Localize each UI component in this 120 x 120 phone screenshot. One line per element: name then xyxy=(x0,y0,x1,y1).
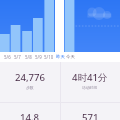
button[interactable]: Today step chart xyxy=(64,0,120,52)
staticText: 5/8 xyxy=(25,54,32,60)
staticText: 24,776 xyxy=(15,71,46,84)
button[interactable]: 24,776 xyxy=(0,62,60,102)
staticText: 5/6 xyxy=(4,54,11,60)
staticText: 571 xyxy=(82,111,99,120)
staticText: 今天 xyxy=(66,54,75,60)
button[interactable]: 14.8 xyxy=(0,102,60,120)
staticText: 5/10 xyxy=(44,54,54,60)
staticText: 步数 xyxy=(26,85,34,90)
button[interactable]: Weekly step chart xyxy=(0,0,55,52)
staticText: 4时41分 xyxy=(72,71,108,84)
button[interactable]: 571 xyxy=(60,102,120,120)
staticText: 活动时间 xyxy=(82,85,98,90)
staticText: 昨天 xyxy=(56,54,65,60)
staticText: 14.8 xyxy=(20,111,40,120)
staticText: 5/9 xyxy=(35,54,42,60)
button[interactable]: 4时41分 xyxy=(60,62,120,102)
staticText: 5/7 xyxy=(14,54,21,60)
